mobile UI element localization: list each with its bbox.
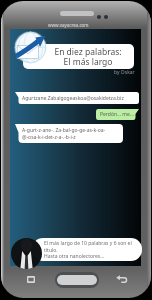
button[interactable]: Perdón... me... [96, 109, 139, 120]
button[interactable]: Author photo [11, 238, 42, 269]
staticText: A-gurt-z-ane-. Za-bal-go-ge-as-k-oa- @-o… [22, 127, 106, 141]
button[interactable]: A-gurt-z-ane-. Za-bal-go-ge-as-k-oa- @-o… [15, 124, 123, 143]
button[interactable]: Home [55, 272, 99, 288]
staticText: by Oskar [114, 69, 135, 76]
button[interactable]: Back [116, 275, 127, 284]
staticText: Agurtzane.Zabalgogeaskoa@osakidetza.biz [22, 95, 124, 102]
staticText: Perdón... me... [100, 111, 134, 118]
staticText: En diez palabras: El más largo [54, 46, 122, 68]
button[interactable]: El más largo de 10 palabras y 6 son el t… [32, 238, 142, 261]
button[interactable]: Agurtzane.Zabalgogeaskoa@osakidetza.biz [15, 92, 139, 104]
staticText: www.vayacrea.com [48, 22, 89, 28]
staticText: El más largo de 10 palabras y 6 son el t… [44, 240, 142, 260]
button[interactable]: En diez palabras: El más largo [23, 44, 134, 69]
button[interactable]: Menu [27, 276, 35, 283]
